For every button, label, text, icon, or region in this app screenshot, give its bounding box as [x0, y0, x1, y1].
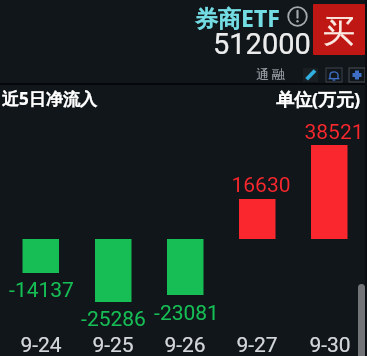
staticText: 9-26 — [164, 333, 206, 356]
staticText: 9-25 — [92, 333, 134, 356]
staticText: -23081 — [154, 301, 219, 326]
staticText: 券商ETF — [195, 2, 280, 33]
staticText: 近5日净流入 — [2, 87, 97, 110]
staticText: 9-30 — [309, 333, 351, 356]
staticText: 38521 — [304, 120, 364, 145]
staticText: 通 — [256, 66, 269, 82]
button[interactable]: Edit — [303, 68, 318, 82]
staticText: 9-27 — [236, 333, 278, 356]
staticText: -14137 — [9, 278, 74, 303]
staticText: 16630 — [231, 173, 291, 198]
button[interactable]: 买 — [313, 4, 365, 55]
staticText: 买 — [323, 11, 355, 51]
staticText: 单位(万元) — [276, 87, 361, 112]
button[interactable]: Add to watchlist — [349, 68, 365, 82]
staticText: 9-24 — [20, 333, 62, 356]
staticText: 512000 — [213, 27, 311, 61]
button[interactable]: 券商ETF — [195, 2, 308, 33]
staticText: 融 — [272, 66, 285, 82]
staticText: -25286 — [81, 307, 146, 332]
button[interactable]: Price alert — [326, 68, 342, 82]
